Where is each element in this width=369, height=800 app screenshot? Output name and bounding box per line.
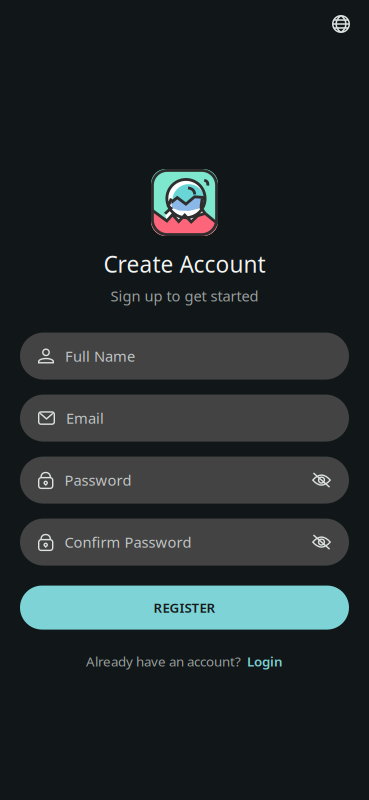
- button[interactable]: Full Name: [20, 333, 349, 380]
- staticText: Sign up to get started: [110, 286, 258, 306]
- button[interactable]: Login: [247, 653, 283, 670]
- staticText: Already have an account?: [86, 653, 241, 670]
- staticText: Login: [247, 653, 283, 670]
- staticText: Email: [66, 408, 104, 428]
- staticText: Create Account: [103, 249, 265, 279]
- staticText: Password: [64, 470, 131, 490]
- button[interactable]: Confirm Password: [20, 519, 349, 566]
- button[interactable]: Password: [20, 457, 349, 504]
- staticText: Confirm Password: [64, 532, 191, 552]
- staticText: Full Name: [65, 346, 135, 366]
- staticText: REGISTER: [153, 599, 215, 616]
- button[interactable]: Email: [20, 395, 349, 442]
- button[interactable]: REGISTER: [20, 586, 349, 630]
- button[interactable]: Change language: [324, 7, 358, 41]
